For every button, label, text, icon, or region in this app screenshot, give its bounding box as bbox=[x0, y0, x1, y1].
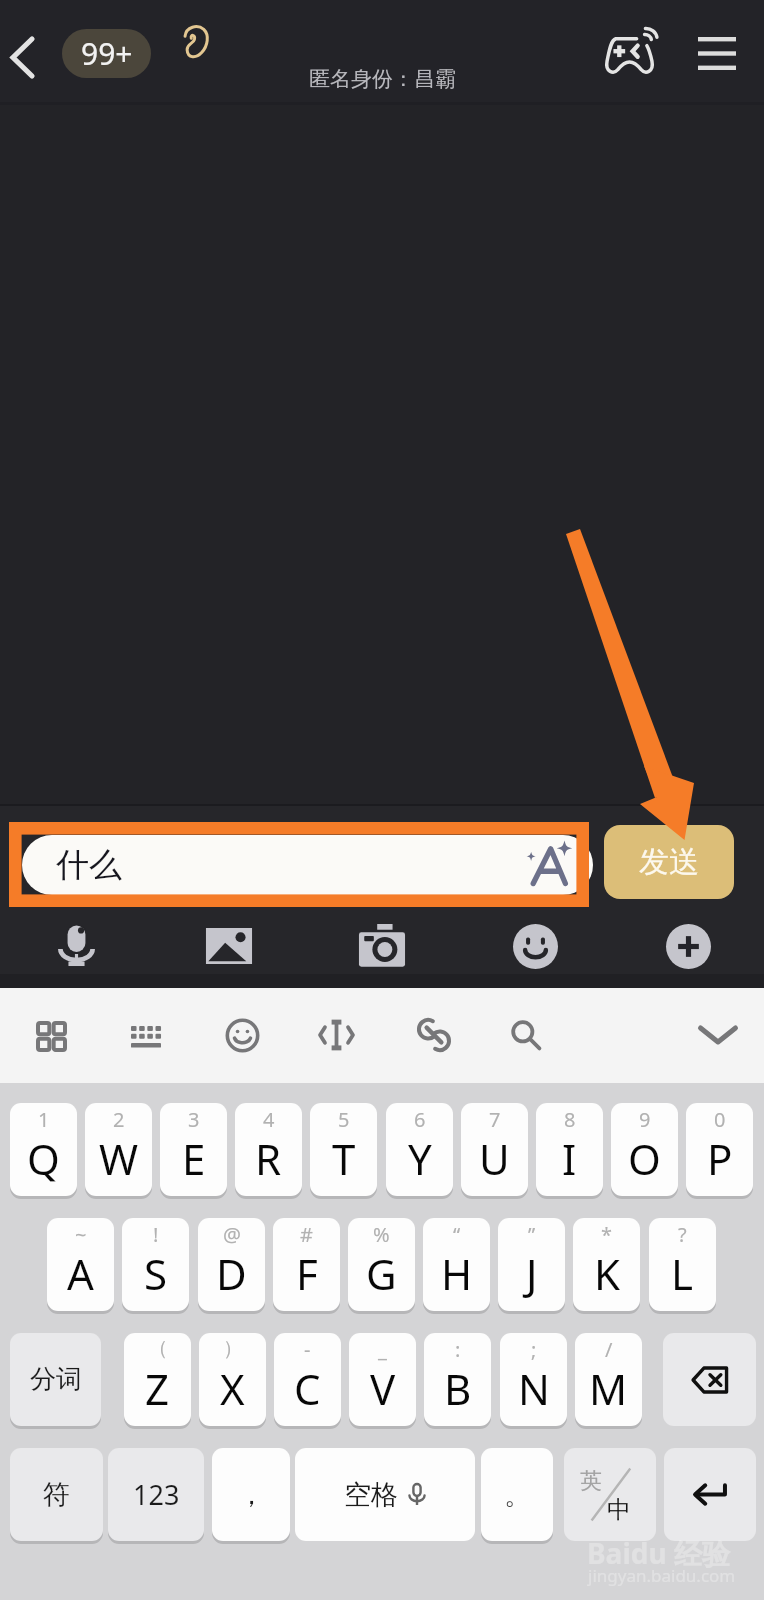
button[interactable]: ， bbox=[212, 1448, 290, 1541]
button[interactable]: Enter bbox=[664, 1448, 756, 1541]
staticText: H bbox=[441, 1245, 473, 1302]
staticText: X bbox=[220, 1360, 245, 1417]
staticText: T bbox=[332, 1130, 356, 1187]
staticText: 3 bbox=[188, 1106, 200, 1133]
button[interactable]: ! bbox=[122, 1218, 189, 1311]
button[interactable]: ） bbox=[199, 1333, 266, 1426]
button[interactable]: Emoji bbox=[497, 908, 573, 984]
button[interactable]: 符 bbox=[10, 1448, 103, 1541]
button[interactable]: Camera bbox=[344, 908, 420, 984]
button[interactable]: : bbox=[424, 1333, 491, 1426]
button[interactable]: 发送 bbox=[604, 825, 734, 899]
staticText: @ bbox=[223, 1221, 241, 1248]
button[interactable]: # bbox=[273, 1218, 340, 1311]
staticText: 1 bbox=[38, 1106, 50, 1133]
button[interactable]: Edit text bbox=[305, 1004, 367, 1066]
staticText: C bbox=[294, 1360, 321, 1417]
staticText: 8 bbox=[564, 1106, 576, 1133]
staticText: ; bbox=[531, 1336, 537, 1363]
staticText: W bbox=[99, 1130, 139, 1187]
staticText: Q bbox=[27, 1130, 60, 1187]
staticText: M bbox=[589, 1360, 628, 1417]
staticText: Baidu 经验 bbox=[587, 1534, 730, 1572]
button[interactable]: ; bbox=[500, 1333, 567, 1426]
staticText: # bbox=[300, 1221, 313, 1248]
staticText: _ bbox=[378, 1336, 387, 1363]
staticText: I bbox=[562, 1130, 577, 1187]
staticText: F bbox=[296, 1245, 318, 1302]
button[interactable]: ~ bbox=[47, 1218, 114, 1311]
staticText: 中 bbox=[607, 1495, 631, 1525]
staticText: L bbox=[671, 1245, 694, 1302]
button[interactable]: Backspace bbox=[663, 1333, 756, 1426]
staticText: （ bbox=[148, 1336, 168, 1361]
button[interactable]: 0 bbox=[686, 1103, 753, 1196]
button[interactable]: Voice message bbox=[38, 908, 114, 984]
button[interactable]: Menu bbox=[686, 22, 748, 84]
staticText: ， bbox=[238, 1478, 265, 1512]
button[interactable]: 123 bbox=[108, 1448, 204, 1541]
staticText: “ bbox=[453, 1221, 461, 1248]
button[interactable]: 分词 bbox=[10, 1333, 101, 1426]
button[interactable]: 什么 bbox=[22, 835, 593, 895]
staticText: ? bbox=[678, 1221, 687, 1248]
button[interactable]: ” bbox=[498, 1218, 565, 1311]
button[interactable]: 2 bbox=[85, 1103, 152, 1196]
button[interactable]: English Chinese toggle bbox=[564, 1448, 656, 1541]
staticText: U bbox=[479, 1130, 510, 1187]
staticText: 99+ bbox=[81, 33, 133, 74]
button[interactable]: % bbox=[348, 1218, 415, 1311]
staticText: 0 bbox=[714, 1106, 726, 1133]
button[interactable]: Symbols bbox=[20, 1005, 82, 1067]
staticText: G bbox=[366, 1245, 397, 1302]
button[interactable]: * bbox=[573, 1218, 640, 1311]
button[interactable]: （ bbox=[124, 1333, 191, 1426]
button[interactable]: More bbox=[650, 908, 726, 984]
staticText: P bbox=[707, 1130, 733, 1187]
staticText: 英 bbox=[580, 1467, 602, 1495]
button[interactable]: 9 bbox=[611, 1103, 678, 1196]
button[interactable]: Photo bbox=[191, 908, 267, 984]
staticText: ~ bbox=[75, 1221, 87, 1248]
staticText: 符 bbox=[43, 1478, 70, 1512]
staticText: 分词 bbox=[30, 1363, 82, 1396]
button[interactable]: 5 bbox=[310, 1103, 377, 1196]
staticText: J bbox=[526, 1245, 538, 1302]
staticText: 什么 bbox=[56, 844, 122, 886]
staticText: Z bbox=[145, 1360, 170, 1417]
staticText: - bbox=[304, 1336, 311, 1363]
button[interactable]: Hide keyboard bbox=[687, 1004, 749, 1066]
staticText: 4 bbox=[263, 1106, 275, 1133]
button[interactable]: 99+ bbox=[62, 29, 151, 78]
button[interactable]: 7 bbox=[461, 1103, 528, 1196]
button[interactable]: Keyboard layout bbox=[115, 1005, 177, 1067]
staticText: 7 bbox=[489, 1106, 501, 1133]
button[interactable]: Search bbox=[495, 1004, 557, 1066]
button[interactable]: / bbox=[575, 1333, 642, 1426]
button[interactable]: - bbox=[274, 1333, 341, 1426]
button[interactable]: 8 bbox=[536, 1103, 603, 1196]
button[interactable]: Listen bbox=[171, 15, 223, 67]
button[interactable]: Back bbox=[0, 29, 44, 85]
staticText: : bbox=[455, 1336, 461, 1363]
staticText: % bbox=[373, 1221, 390, 1248]
button[interactable]: Emoji bbox=[211, 1004, 273, 1066]
staticText: S bbox=[144, 1245, 168, 1302]
button[interactable]: 。 bbox=[481, 1448, 553, 1541]
button[interactable]: 1 bbox=[10, 1103, 77, 1196]
staticText: O bbox=[628, 1130, 661, 1187]
button[interactable]: @ bbox=[198, 1218, 265, 1311]
button[interactable]: ? bbox=[649, 1218, 716, 1311]
button[interactable]: Clipboard bbox=[403, 1004, 465, 1066]
staticText: K bbox=[594, 1245, 620, 1302]
button[interactable]: “ bbox=[423, 1218, 490, 1311]
button[interactable]: 4 bbox=[235, 1103, 302, 1196]
button[interactable]: 3 bbox=[160, 1103, 227, 1196]
button[interactable]: Games bbox=[598, 21, 660, 83]
button[interactable]: 6 bbox=[386, 1103, 453, 1196]
staticText: ” bbox=[528, 1221, 536, 1248]
button[interactable]: 空格 bbox=[295, 1448, 475, 1541]
staticText: 6 bbox=[414, 1106, 426, 1133]
staticText: Y bbox=[408, 1130, 432, 1187]
button[interactable]: _ bbox=[349, 1333, 416, 1426]
